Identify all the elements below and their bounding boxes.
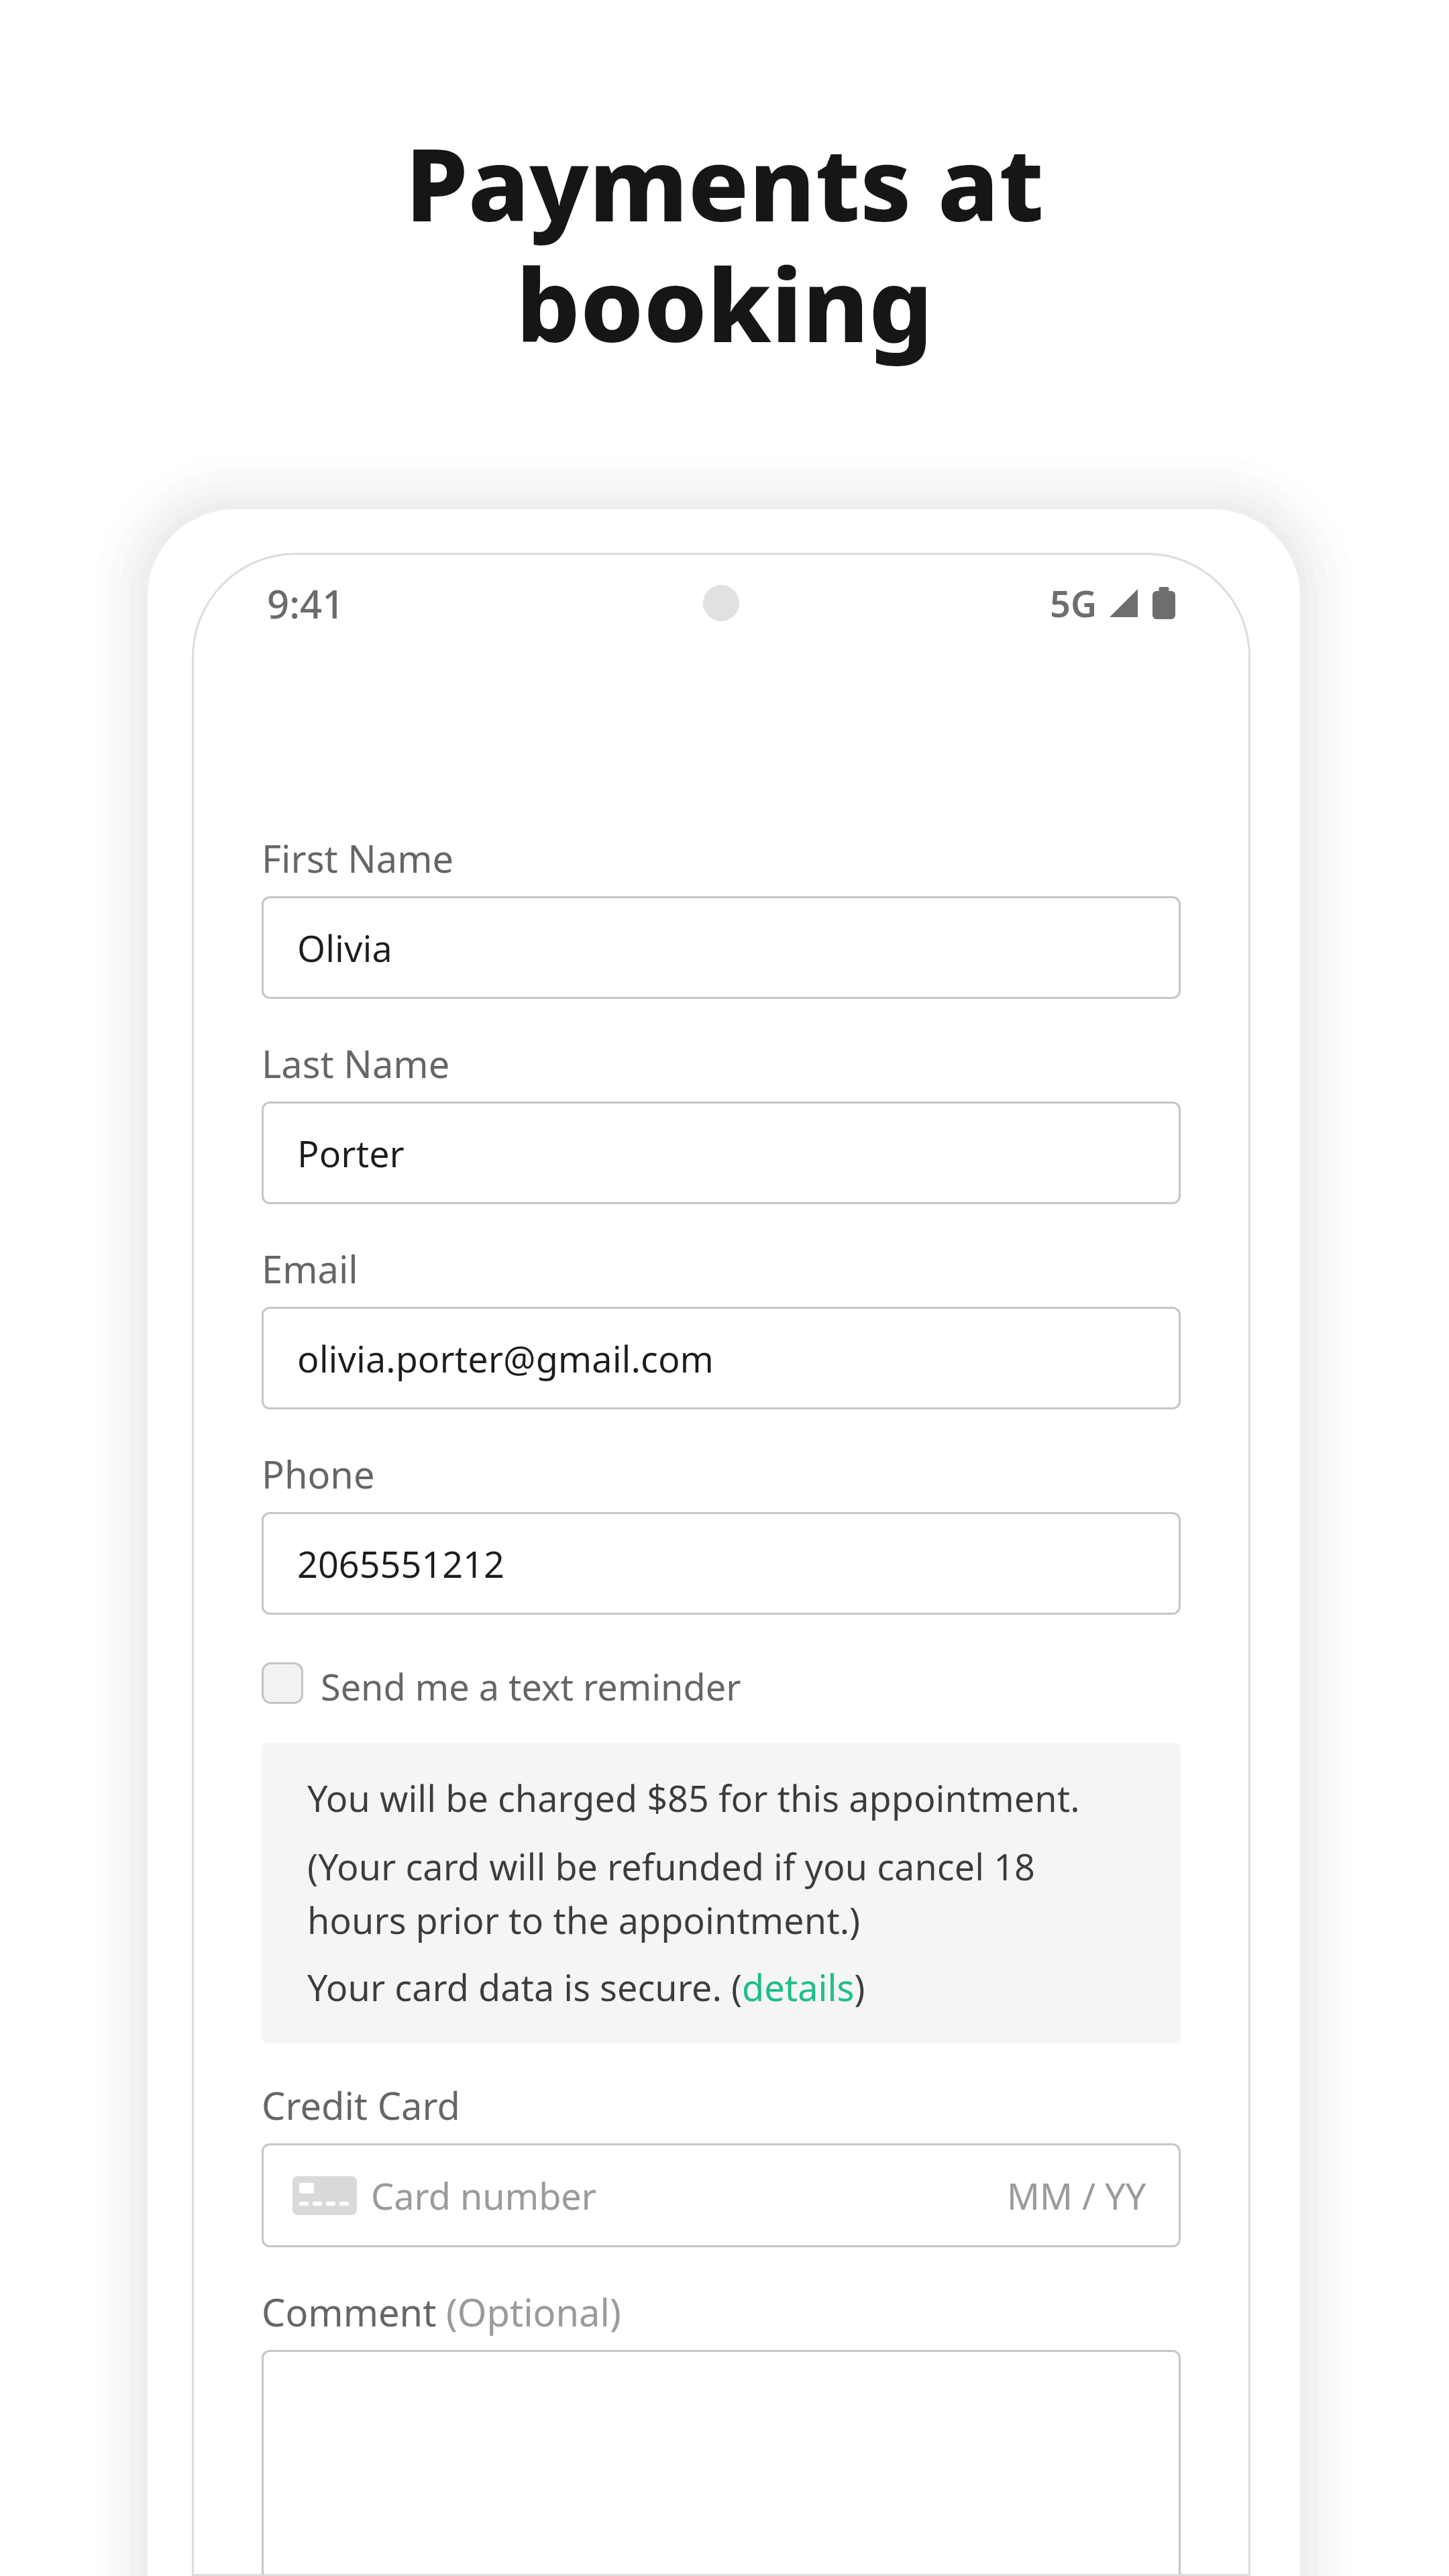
staticText: Send me a text reminder — [321, 1662, 741, 1704]
staticText: You will be charged $85 for this appoint… — [307, 1773, 1080, 1823]
staticText: Credit Card — [262, 2080, 460, 2131]
button[interactable]: olivia.porter@gmail.com — [262, 1307, 1181, 1409]
staticText: Card number — [371, 2171, 597, 2220]
staticText: Olivia — [297, 923, 392, 973]
staticText: Email — [262, 1243, 358, 1294]
staticText: Phone — [262, 1448, 375, 1499]
staticText: 5G — [1050, 578, 1097, 628]
staticText: MM / YY — [1007, 2171, 1146, 2220]
staticText: First Name — [262, 833, 454, 883]
staticText: olivia.porter@gmail.com — [297, 1334, 714, 1383]
button[interactable]: Card number — [262, 2143, 1181, 2247]
staticText: 9:41 — [267, 577, 345, 630]
button[interactable] — [262, 2350, 1181, 2576]
staticText: Last Name — [262, 1038, 450, 1089]
button[interactable]: 2065551212 — [262, 1512, 1181, 1615]
staticText: Comment (Optional) — [262, 2286, 621, 2337]
staticText: Payments at booking — [0, 114, 1449, 372]
staticText: 2065551212 — [297, 1539, 504, 1589]
button[interactable]: Your card data is secure. (details) — [307, 1962, 865, 2012]
button[interactable]: Porter — [262, 1102, 1181, 1204]
staticText: Porter — [297, 1128, 405, 1178]
staticText: (Your card will be refunded if you cance… — [307, 1841, 1035, 1945]
button[interactable]: Olivia — [262, 896, 1181, 999]
button[interactable]: Send me a text reminder — [262, 1662, 741, 1704]
